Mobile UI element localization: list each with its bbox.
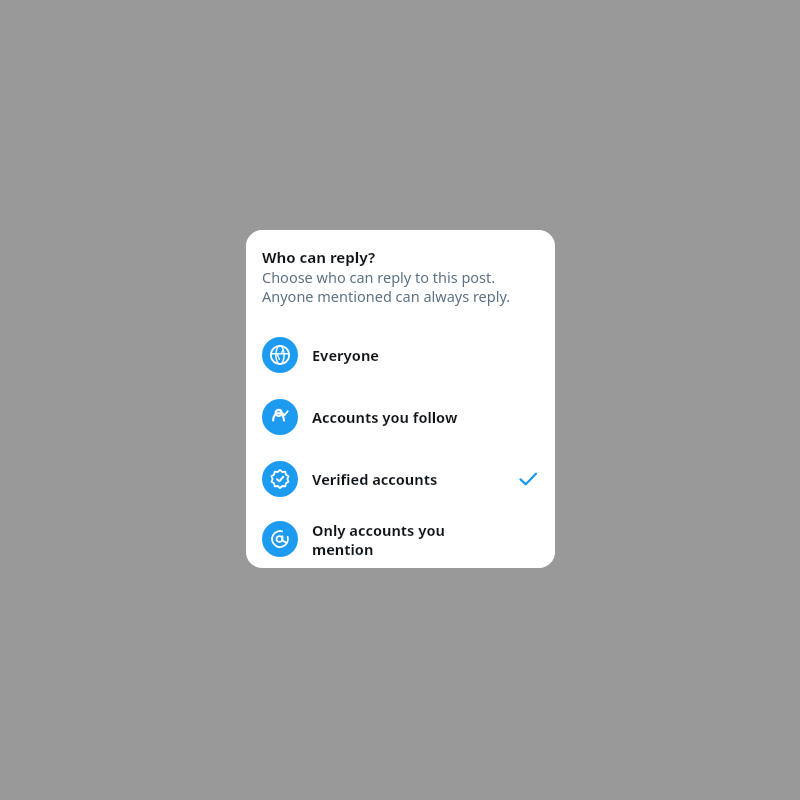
staticText: Choose who can reply to this post. Anyon… (262, 267, 511, 307)
button[interactable]: Only accounts you mention (246, 510, 555, 568)
button[interactable]: Accounts you follow (246, 386, 555, 448)
other: Everyone (262, 337, 298, 373)
staticText: Everyone (312, 345, 379, 365)
staticText: Accounts you follow (312, 407, 458, 427)
staticText: Verified accounts (312, 469, 438, 489)
staticText: Only accounts you mention (312, 520, 445, 559)
button[interactable]: Everyone (246, 324, 555, 386)
staticText: Who can reply? (262, 247, 376, 267)
other: Only accounts you mention (262, 521, 298, 557)
other: Verified accounts (262, 461, 298, 497)
button[interactable]: Verified accounts (246, 448, 555, 510)
other: Accounts you follow (262, 399, 298, 435)
